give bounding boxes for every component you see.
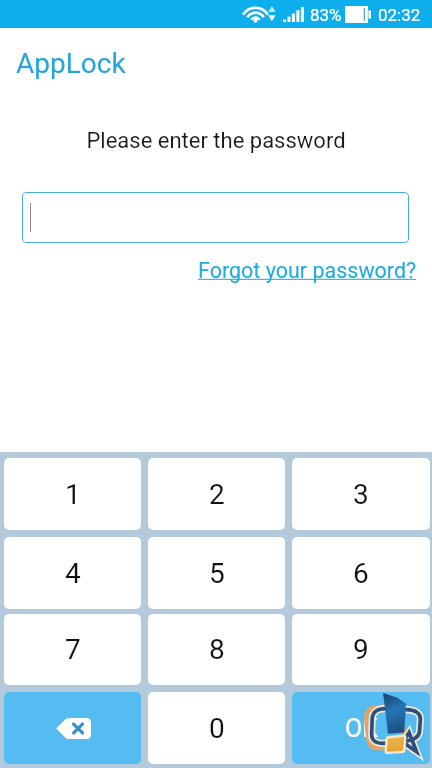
button[interactable]: Backspace [4, 692, 141, 764]
button[interactable] [22, 192, 409, 243]
staticText: 1 [65, 478, 81, 511]
staticText: Please enter the password [0, 128, 432, 154]
staticText: 2 [209, 478, 225, 511]
button[interactable]: 9 [292, 614, 430, 685]
button[interactable]: 8 [148, 614, 285, 685]
staticText: OK [345, 714, 378, 743]
staticText: 5 [209, 557, 225, 590]
staticText: 4 [65, 557, 81, 590]
staticText: 3 [353, 478, 369, 511]
button[interactable]: 7 [4, 614, 141, 685]
button[interactable]: 6 [292, 537, 430, 609]
staticText: 83% [310, 5, 342, 25]
button[interactable]: 1 [4, 458, 141, 530]
button[interactable]: Forgot your password? [198, 258, 417, 283]
button[interactable]: 3 [292, 458, 430, 530]
button[interactable]: 2 [148, 458, 285, 530]
staticText: 02:32 [378, 5, 421, 25]
staticText: 8 [209, 633, 225, 666]
staticText: AppLock [16, 47, 126, 80]
staticText: 6 [353, 557, 369, 590]
button[interactable]: 0 [148, 692, 285, 764]
button[interactable]: OK [292, 692, 430, 764]
button[interactable]: 5 [148, 537, 285, 609]
staticText: 0 [209, 712, 225, 745]
staticText: 7 [65, 633, 81, 666]
button[interactable]: 4 [4, 537, 141, 609]
staticText: 9 [353, 633, 369, 666]
